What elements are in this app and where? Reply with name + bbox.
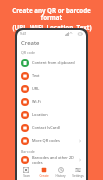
staticText: Barcodes and other 2D codes [32, 155, 78, 164]
button[interactable]: Scan [17, 164, 35, 180]
button[interactable]: Barcodes and other 2D codes [17, 155, 86, 164]
staticText: Contact (vCard) [32, 125, 82, 130]
staticText: Create [39, 174, 49, 178]
button[interactable]: History [52, 164, 69, 180]
staticText: 9:41 [20, 32, 27, 36]
staticText: Content from clipboard [32, 60, 82, 65]
staticText: QR code [21, 50, 36, 55]
button[interactable]: Text [17, 69, 86, 82]
button[interactable]: URL [17, 82, 86, 95]
staticText: Location [32, 112, 82, 117]
staticText: URL [32, 86, 82, 91]
button[interactable]: Wi-Fi [17, 95, 86, 108]
staticText: More QR codes [32, 138, 78, 143]
button[interactable]: Settings [69, 164, 86, 180]
button[interactable]: Location [17, 108, 86, 121]
staticText: Text [32, 73, 82, 78]
staticText: Scan [23, 174, 30, 178]
button[interactable]: Contact (vCard) [17, 121, 86, 134]
staticText: History [55, 174, 66, 178]
staticText: Create any QR or barcode format [3, 6, 100, 22]
staticText: Wi-Fi [32, 99, 82, 104]
button[interactable]: More QR codes [17, 134, 86, 147]
staticText: (URL, WiFi, Location, Text) [12, 23, 92, 31]
button[interactable]: Create [35, 164, 52, 180]
staticText: Settings [72, 174, 84, 178]
button[interactable]: Content from clipboard [17, 56, 86, 69]
staticText: Create [21, 39, 40, 47]
staticText: Barcode [21, 149, 35, 154]
